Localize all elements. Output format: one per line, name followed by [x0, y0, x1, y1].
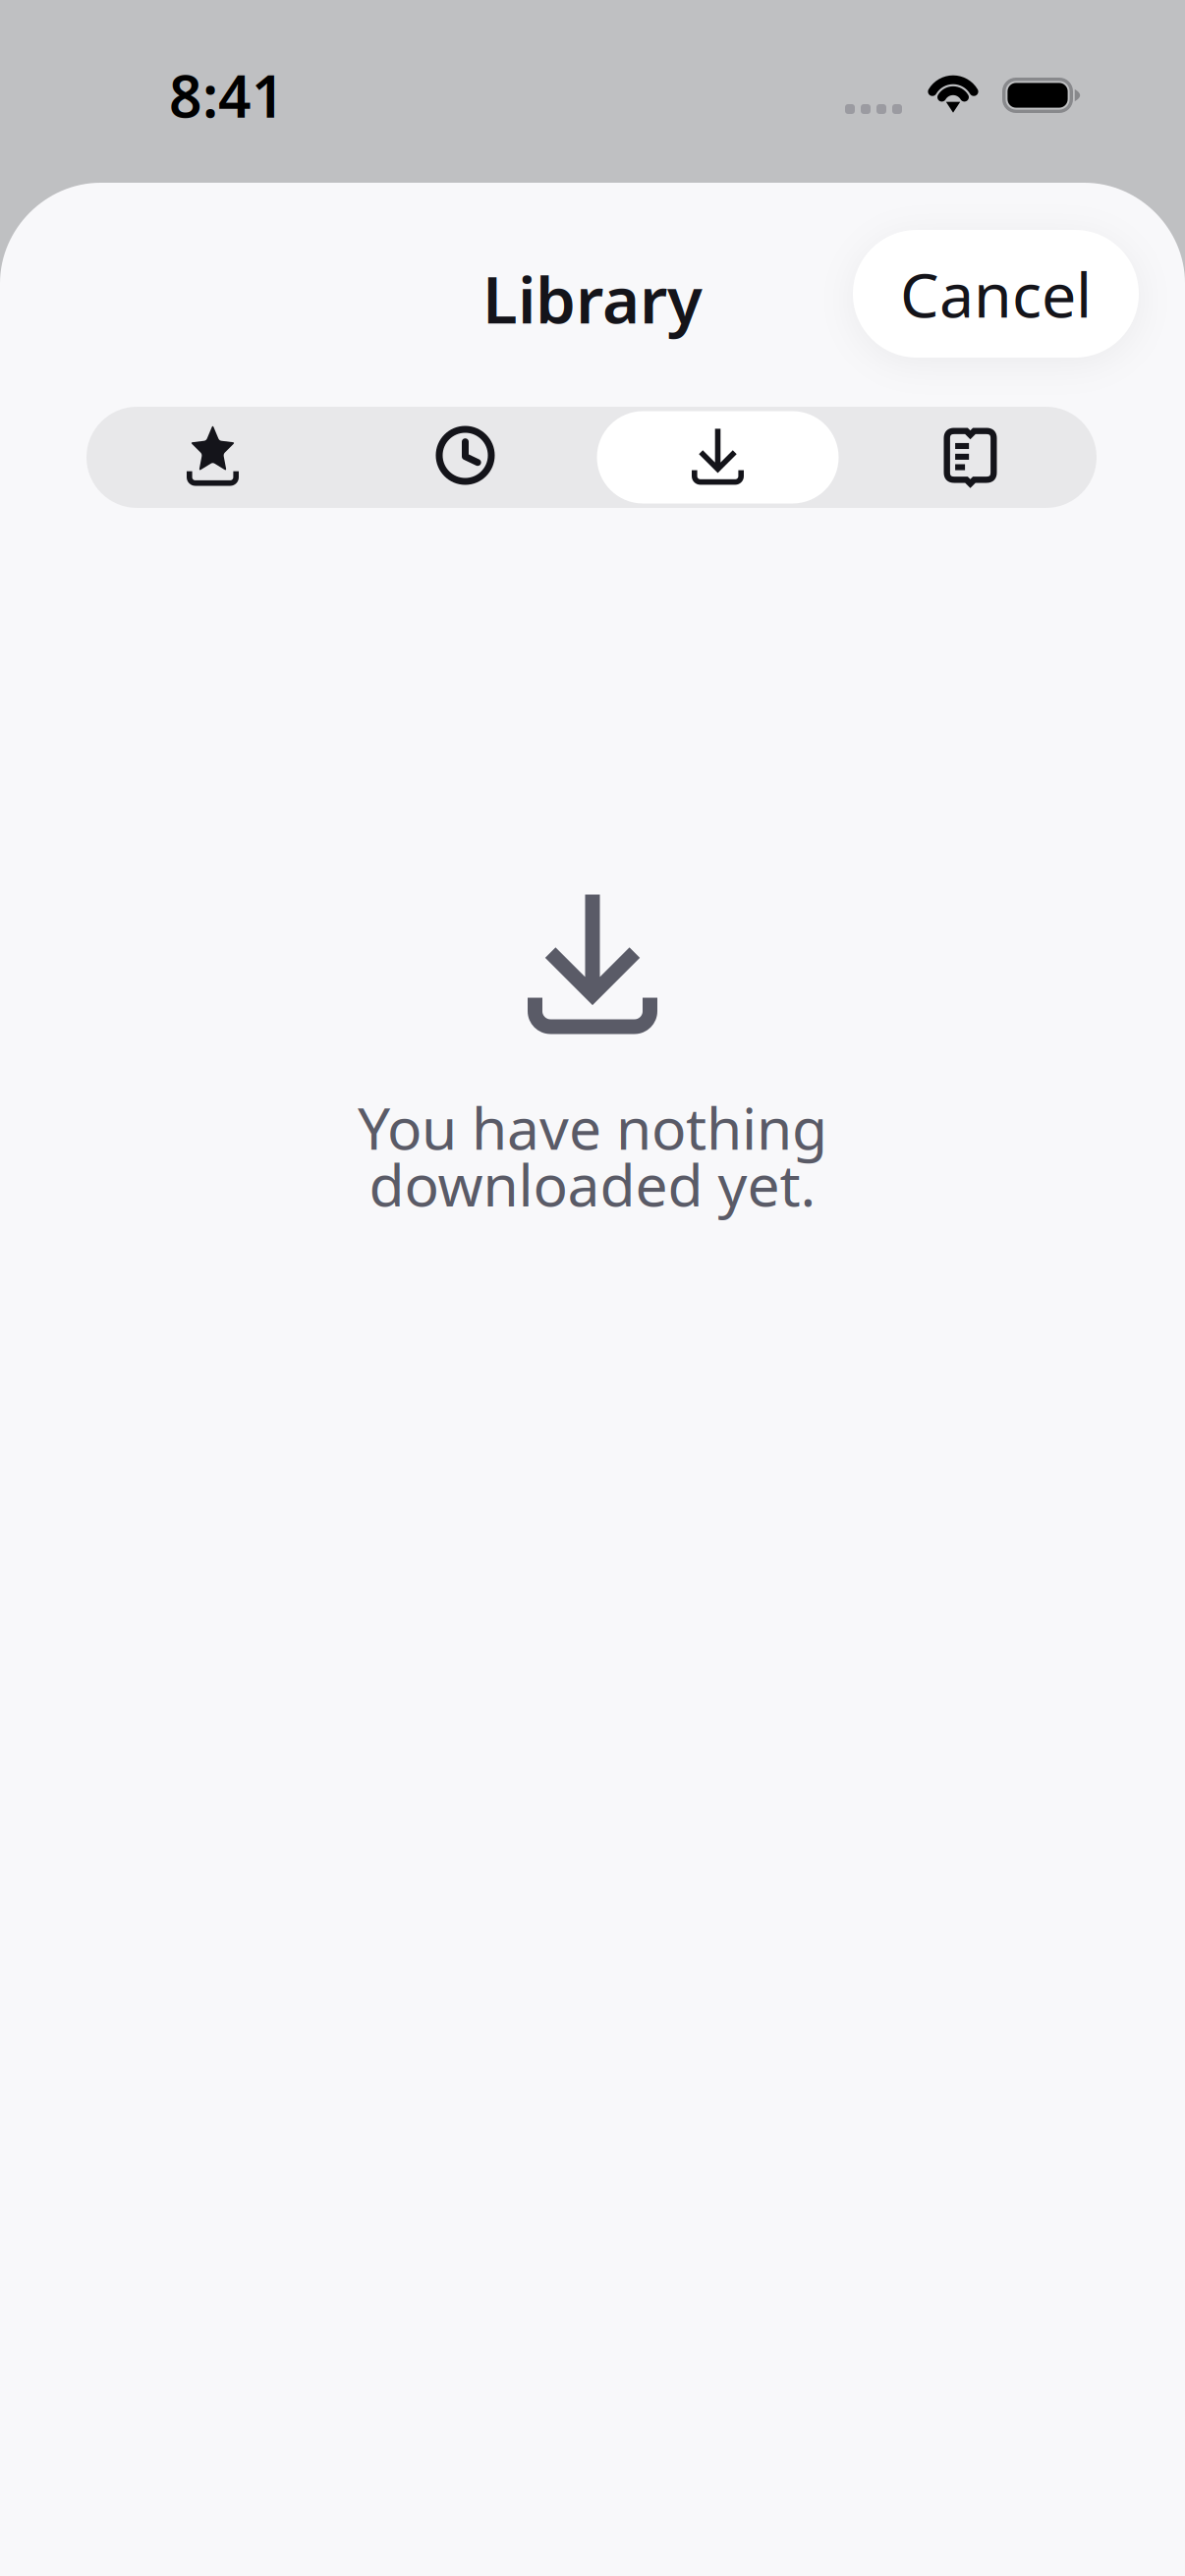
staticText: 8:41	[169, 57, 285, 134]
staticText: Library	[482, 256, 703, 341]
staticText: You have nothing	[358, 1089, 827, 1166]
button[interactable]: Recents	[339, 407, 592, 508]
button[interactable]: Library	[844, 407, 1097, 508]
button[interactable]: Downloads	[592, 407, 844, 508]
staticText: Cancel	[900, 253, 1092, 335]
button[interactable]: Favorites	[86, 407, 339, 508]
staticText: downloaded yet.	[369, 1146, 816, 1222]
button[interactable]: Cancel	[853, 230, 1139, 358]
